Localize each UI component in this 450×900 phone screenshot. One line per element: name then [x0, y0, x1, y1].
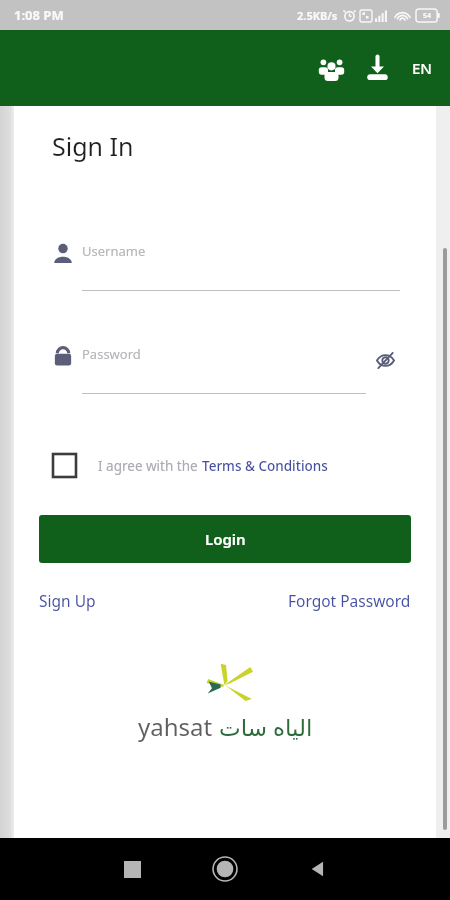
button[interactable]: Recents: [113, 850, 151, 888]
staticText: Terms & Conditions: [202, 457, 328, 475]
staticText: 1:08 PM: [14, 6, 64, 24]
button[interactable]: I agree with the: [14, 453, 436, 478]
button[interactable]: EN: [400, 45, 444, 91]
button[interactable]: Sign Up: [39, 590, 96, 611]
staticText: الياه سات: [219, 711, 313, 742]
staticText: Sign In: [52, 129, 134, 163]
button[interactable]: Download: [354, 45, 400, 91]
staticText: Sign Up: [39, 590, 96, 611]
button[interactable]: Show password: [370, 345, 400, 375]
button[interactable]: Login: [39, 515, 411, 563]
button[interactable]: Home: [205, 849, 245, 889]
staticText: Password: [82, 345, 141, 363]
staticText: Username: [82, 242, 146, 260]
button[interactable]: Back: [299, 850, 337, 888]
staticText: 2.5KB/s: [297, 8, 338, 23]
staticText: 54: [423, 11, 432, 21]
staticText: I agree with the: [98, 457, 202, 475]
button[interactable]: Group: [308, 45, 354, 91]
staticText: EN: [412, 58, 432, 78]
button[interactable]: Forgot Password: [288, 590, 411, 611]
staticText: yahsat: [138, 710, 219, 743]
staticText: Forgot Password: [288, 590, 411, 611]
staticText: Login: [205, 529, 246, 549]
